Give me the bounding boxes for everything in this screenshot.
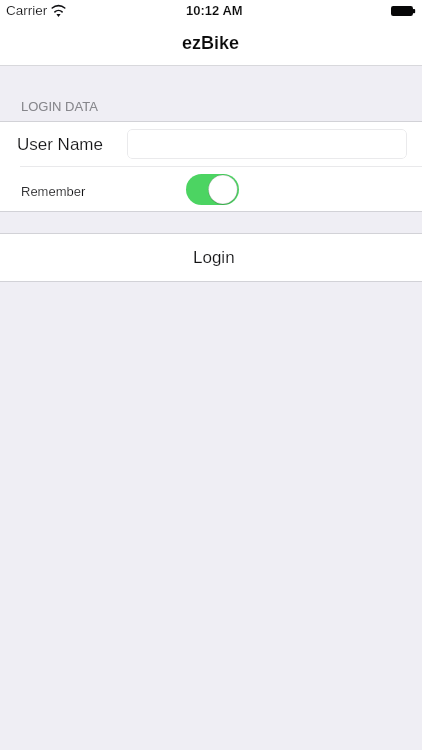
staticText: ezBike	[182, 33, 240, 53]
staticText: Carrier	[6, 3, 48, 18]
staticText: Login	[193, 248, 235, 267]
staticText: Remember	[21, 184, 86, 199]
button[interactable]: Login	[0, 234, 422, 281]
staticText: 10:12 AM	[186, 3, 243, 18]
staticText: User Name	[17, 135, 103, 154]
button[interactable]: User Name	[0, 122, 422, 166]
button[interactable]: Remember	[0, 167, 422, 211]
staticText: LOGIN DATA	[21, 99, 98, 114]
button[interactable]: Remember toggle	[186, 174, 239, 205]
